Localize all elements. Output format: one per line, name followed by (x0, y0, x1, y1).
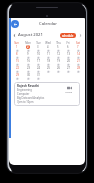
staticText: Sun (14, 41, 19, 45)
button[interactable]: 27 (63, 66, 73, 73)
staticText: 30 (27, 73, 30, 77)
button[interactable]: 26 (53, 66, 63, 73)
staticText: Calendar (39, 21, 57, 27)
staticText: 16 (27, 59, 30, 63)
staticText: 14 (77, 52, 80, 56)
staticText: 8 (16, 52, 18, 56)
staticText: 9 (27, 52, 29, 56)
button[interactable]: 20 (63, 59, 73, 66)
button[interactable]: 28 (73, 66, 83, 73)
staticText: 2 (27, 45, 29, 49)
staticText: Attend (65, 91, 73, 94)
staticText: 1 (16, 45, 18, 49)
staticText: 12 (57, 52, 60, 56)
staticText: 4 (47, 45, 49, 49)
staticText: 24 (37, 66, 40, 70)
staticText: 28 (77, 66, 80, 70)
staticText: Fri (66, 41, 70, 45)
button[interactable]: 5 (53, 45, 63, 52)
staticText: Thu (56, 41, 61, 45)
button[interactable]: 11 (43, 52, 53, 59)
button[interactable]: 12 (53, 52, 63, 59)
staticText: Rajesh Revathi (17, 84, 40, 88)
staticText: Wed (45, 41, 51, 45)
staticText: 26 (57, 66, 60, 70)
staticText: 5 (57, 45, 59, 49)
staticText: Computer (17, 92, 30, 96)
button[interactable]: 17 (33, 59, 43, 66)
staticText: 31 (37, 73, 40, 77)
staticText: 15 (16, 59, 19, 63)
staticText: 21 (77, 59, 80, 63)
staticText: 7pm to 10pm (17, 100, 34, 104)
staticText: 7 (77, 45, 79, 49)
button[interactable]: schedule (60, 33, 76, 38)
staticText: Tue (36, 41, 41, 45)
staticText: 23 (27, 66, 30, 70)
button[interactable]: Next month (78, 33, 82, 37)
staticText: 22 (16, 66, 19, 70)
staticText: Mon (25, 41, 31, 45)
button[interactable]: 24 (33, 66, 43, 73)
button[interactable]: 3 (33, 45, 43, 52)
button[interactable]: 30 (22, 73, 33, 80)
staticText: 20 (67, 59, 70, 63)
staticText: August 2021 (18, 32, 43, 38)
staticText: Big Data and Analytics (17, 96, 45, 100)
staticText: 17 (37, 59, 40, 63)
button[interactable]: 18 (43, 59, 53, 66)
button[interactable]: 1 (11, 45, 22, 52)
button[interactable]: 22 (11, 66, 22, 73)
button[interactable]: 14 (73, 52, 83, 59)
button[interactable]: 16 (22, 59, 33, 66)
button[interactable]: 15 (11, 59, 22, 66)
staticText: Engineering (17, 88, 32, 92)
button[interactable]: Back (11, 20, 19, 28)
button[interactable]: 31 (33, 73, 43, 80)
button[interactable]: 29 (11, 73, 22, 80)
button[interactable]: 9 (22, 52, 33, 59)
button[interactable]: 13 (63, 52, 73, 59)
staticText: 11 (47, 52, 50, 56)
button[interactable]: 23 (22, 66, 33, 73)
staticText: 19 (57, 59, 60, 63)
button[interactable]: 21 (73, 59, 83, 66)
staticText: 13 (67, 52, 70, 56)
staticText: 27 (67, 66, 70, 70)
button[interactable]: 6 (63, 45, 73, 52)
button[interactable]: 8 (11, 52, 22, 59)
staticText: 18 (47, 59, 50, 63)
button[interactable]: Rajesh Revathi (14, 82, 80, 106)
staticText: schedule (62, 34, 74, 38)
staticText: 25 (47, 66, 50, 70)
button[interactable]: Previous month (12, 33, 16, 37)
staticText: Sat (76, 41, 80, 45)
button[interactable]: 7 (73, 45, 83, 52)
button[interactable]: 4 (43, 45, 53, 52)
staticText: 29 (16, 73, 19, 77)
staticText: 10 (37, 52, 40, 56)
button[interactable]: 25 (43, 66, 53, 73)
button[interactable]: 2 (22, 45, 33, 52)
button[interactable]: 10 (33, 52, 43, 59)
staticText: 6 (67, 45, 69, 49)
button[interactable]: 19 (53, 59, 63, 66)
staticText: 3 (37, 45, 39, 49)
